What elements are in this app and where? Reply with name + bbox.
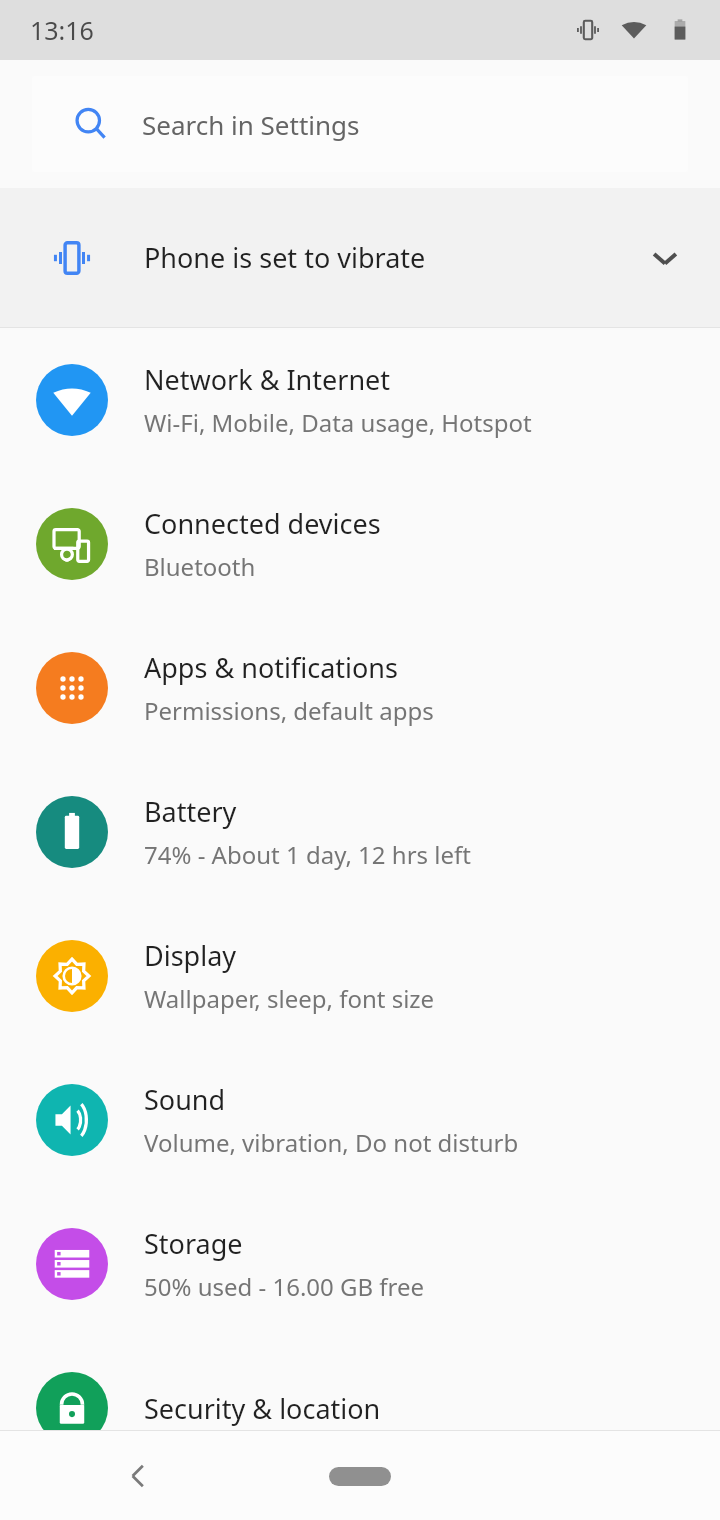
staticText: Apps & notifications [144, 649, 398, 686]
staticText: Connected devices [144, 505, 381, 542]
staticText: Wallpaper, sleep, font size [144, 982, 435, 1015]
button[interactable]: Phone is set to vibrate [0, 188, 720, 327]
button[interactable]: Back [108, 1445, 170, 1507]
staticText: 50% used - 16.00 GB free [144, 1270, 425, 1303]
staticText: Volume, vibration, Do not disturb [144, 1126, 519, 1159]
button[interactable]: Sound [0, 1048, 720, 1192]
button[interactable]: Apps & notifications [0, 616, 720, 760]
staticText: Sound [144, 1081, 226, 1118]
button[interactable]: Display [0, 904, 720, 1048]
staticText: Display [144, 937, 237, 974]
button[interactable]: Home [300, 1445, 420, 1507]
staticText: Security & location [144, 1390, 381, 1427]
button[interactable]: Network & Internet [0, 328, 720, 472]
staticText: Bluetooth [144, 550, 256, 583]
staticText: Network & Internet [144, 361, 391, 398]
button[interactable]: Search in Settings [32, 76, 688, 172]
button[interactable]: Security & location [0, 1336, 720, 1480]
staticText: 74% - About 1 day, 12 hrs left [144, 838, 471, 871]
staticText: Phone is set to vibrate [144, 239, 610, 276]
staticText: Wi-Fi, Mobile, Data usage, Hotspot [144, 406, 532, 439]
staticText: Battery [144, 793, 237, 830]
button[interactable]: Battery [0, 760, 720, 904]
button[interactable]: Connected devices [0, 472, 720, 616]
staticText: Search in Settings [142, 107, 360, 142]
staticText: Storage [144, 1225, 243, 1262]
button[interactable]: Storage [0, 1192, 720, 1336]
staticText: Permissions, default apps [144, 694, 434, 727]
staticText: 13:16 [30, 13, 94, 47]
